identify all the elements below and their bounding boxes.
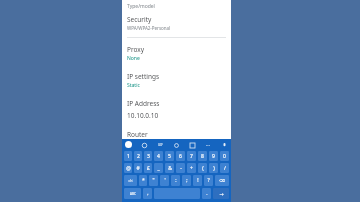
- button[interactable]: ): [209, 163, 218, 173]
- button[interactable]: ': [160, 175, 169, 186]
- staticText: 0: [223, 153, 226, 160]
- button[interactable]: More options: [204, 141, 212, 149]
- staticText: 9: [212, 153, 215, 160]
- staticText: GIF: [158, 143, 163, 147]
- button[interactable]: 7: [187, 151, 196, 161]
- staticText: /: [224, 165, 226, 172]
- staticText: 8: [201, 153, 204, 160]
- staticText: -: [180, 165, 182, 172]
- button[interactable]: .: [202, 188, 211, 199]
- button[interactable]: IP Address: [127, 99, 160, 120]
- staticText: None: [127, 55, 140, 62]
- button[interactable]: £: [144, 163, 152, 173]
- staticText: Type/model: [127, 3, 155, 10]
- button[interactable]: ⌫: [215, 175, 229, 186]
- staticText: _: [157, 165, 160, 172]
- staticText: ;: [186, 177, 188, 184]
- button[interactable]: 8: [198, 151, 207, 161]
- staticText: ABC: [130, 192, 136, 196]
- staticText: ': [164, 177, 166, 184]
- staticText: 6: [179, 153, 182, 160]
- button[interactable]: 9: [209, 151, 218, 161]
- staticText: £: [147, 165, 150, 172]
- button[interactable]: ABC: [124, 188, 141, 199]
- button[interactable]: 1: [124, 151, 132, 161]
- button[interactable]: IP settings: [127, 72, 160, 89]
- button[interactable]: Emoji: [140, 141, 148, 149]
- button[interactable]: !: [193, 175, 202, 186]
- button[interactable]: =\<: [124, 175, 137, 186]
- button[interactable]: Proxy: [127, 45, 145, 62]
- staticText: ": [152, 177, 155, 184]
- staticText: IP settings: [127, 72, 160, 81]
- staticText: 10.10.0: [127, 142, 150, 151]
- staticText: :: [175, 177, 177, 184]
- staticText: ): [213, 165, 215, 172]
- button[interactable]: #: [134, 163, 142, 173]
- button[interactable]: 0: [220, 151, 229, 161]
- staticText: 1: [127, 153, 130, 160]
- staticText: IP Address: [127, 99, 160, 108]
- staticText: ,: [147, 190, 149, 197]
- button[interactable]: *: [139, 175, 147, 186]
- button[interactable]: Stickers: [188, 141, 196, 149]
- button[interactable]: ;: [182, 175, 191, 186]
- button[interactable]: Clear text: [220, 144, 226, 150]
- staticText: 2: [137, 153, 140, 160]
- staticText: 4: [157, 153, 160, 160]
- button[interactable]: /: [220, 163, 229, 173]
- button[interactable]: @: [124, 163, 132, 173]
- button[interactable]: _: [154, 163, 163, 173]
- staticText: ?: [207, 177, 210, 184]
- button[interactable]: -: [176, 163, 185, 173]
- staticText: Proxy: [127, 45, 145, 54]
- button[interactable]: ,: [143, 188, 152, 199]
- button[interactable]: :: [171, 175, 180, 186]
- staticText: Security: [127, 15, 152, 24]
- staticText: .: [206, 190, 208, 197]
- staticText: &: [168, 165, 172, 172]
- staticText: 3: [147, 153, 150, 160]
- staticText: 10.10.0.10: [127, 111, 159, 120]
- button[interactable]: 5: [165, 151, 174, 161]
- button[interactable]: Keyboard logo: [125, 141, 132, 148]
- button[interactable]: →: [213, 188, 229, 199]
- staticText: Router: [127, 130, 148, 139]
- staticText: (: [202, 165, 204, 172]
- button[interactable]: Settings: [172, 141, 180, 149]
- button[interactable]: 3: [144, 151, 152, 161]
- staticText: +: [190, 165, 193, 172]
- button[interactable]: ?: [204, 175, 213, 186]
- button[interactable]: &: [165, 163, 174, 173]
- button[interactable]: 6: [176, 151, 185, 161]
- staticText: Static: [127, 82, 140, 89]
- button[interactable]: Security: [127, 15, 171, 31]
- button[interactable]: 4: [154, 151, 163, 161]
- staticText: =\<: [128, 179, 133, 183]
- staticText: #: [136, 165, 140, 172]
- staticText: @: [126, 165, 131, 172]
- button[interactable]: (: [198, 163, 207, 173]
- button[interactable]: GIF: [156, 141, 164, 149]
- staticText: ···: [206, 142, 211, 149]
- staticText: ⌫: [219, 178, 225, 183]
- staticText: →: [219, 191, 224, 197]
- staticText: 5: [168, 153, 171, 160]
- staticText: 7: [190, 153, 193, 160]
- button[interactable]: 2: [134, 151, 142, 161]
- staticText: Prefix length: [127, 160, 166, 169]
- staticText: WPA/WPA2-Personal: [127, 25, 171, 31]
- button[interactable]: +: [187, 163, 196, 173]
- staticText: !: [197, 177, 199, 184]
- button[interactable]: Voice input: [220, 141, 228, 149]
- staticText: *: [142, 177, 145, 184]
- button[interactable]: ": [149, 175, 158, 186]
